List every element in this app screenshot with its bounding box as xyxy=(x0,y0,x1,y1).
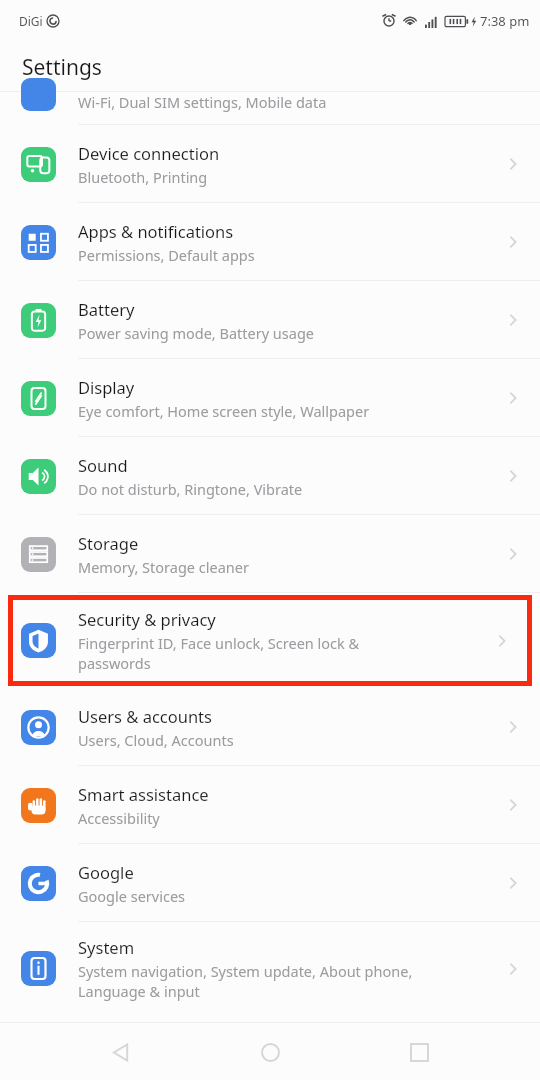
button[interactable]: Back xyxy=(93,1024,149,1080)
button[interactable]: System xyxy=(0,922,540,1015)
button[interactable]: Device connection xyxy=(0,125,540,203)
staticText: Permissions, Default apps xyxy=(78,245,255,265)
staticText: Apps & notifications xyxy=(78,220,234,242)
staticText: Wi-Fi, Dual SIM settings, Mobile data xyxy=(78,92,327,112)
staticText: Power saving mode, Battery usage xyxy=(78,323,315,343)
button[interactable]: Battery xyxy=(0,281,540,359)
staticText: Do not disturb, Ringtone, Vibrate xyxy=(78,479,303,499)
staticText: Battery xyxy=(78,298,135,320)
button[interactable]: Display xyxy=(0,359,540,437)
staticText: 7:38 pm xyxy=(480,12,530,30)
button[interactable]: Google xyxy=(0,844,540,922)
staticText: System navigation, System update, About … xyxy=(78,961,413,1001)
staticText: Fingerprint ID, Face unlock, Screen lock… xyxy=(78,633,360,673)
staticText: Users & accounts xyxy=(78,705,212,727)
staticText: Bluetooth, Printing xyxy=(78,167,208,187)
staticText: Users, Cloud, Accounts xyxy=(78,730,234,750)
button[interactable]: Storage xyxy=(0,515,540,593)
button[interactable]: Apps & notifications xyxy=(0,203,540,281)
button[interactable]: Recent apps xyxy=(391,1024,447,1080)
staticText: Eye comfort, Home screen style, Wallpape… xyxy=(78,401,370,421)
staticText: Device connection xyxy=(78,142,220,164)
staticText: Display xyxy=(78,376,135,398)
button[interactable]: Users & accounts xyxy=(0,688,540,766)
staticText: Sound xyxy=(78,454,128,476)
button[interactable]: Sound xyxy=(0,437,540,515)
staticText: System xyxy=(78,936,135,958)
staticText: Accessibility xyxy=(78,808,160,828)
button[interactable]: Security & privacy xyxy=(13,600,527,681)
staticText: DiGi xyxy=(19,13,43,29)
staticText: Storage xyxy=(78,532,139,554)
staticText: Google services xyxy=(78,886,186,906)
button[interactable]: Home xyxy=(242,1024,298,1080)
staticText: Security & privacy xyxy=(78,608,216,630)
button[interactable]: Wi-Fi, Dual SIM settings, Mobile data xyxy=(0,92,540,125)
staticText: Google xyxy=(78,861,134,883)
button[interactable]: Smart assistance xyxy=(0,766,540,844)
staticText: Settings xyxy=(22,53,102,82)
staticText: Smart assistance xyxy=(78,783,209,805)
staticText: Memory, Storage cleaner xyxy=(78,557,249,577)
